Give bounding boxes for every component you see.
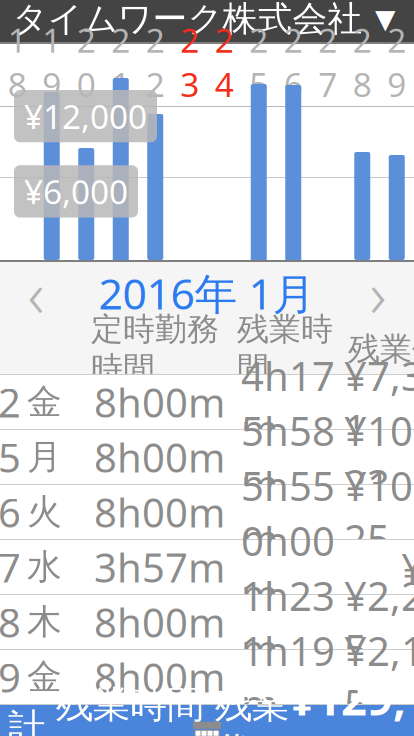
staticText: 27 <box>318 18 337 106</box>
staticText: 月 <box>27 436 62 478</box>
staticText: 8h00m <box>94 595 225 648</box>
staticText: 定時勤務時間 <box>91 310 219 388</box>
staticText: 22 <box>0 375 21 428</box>
staticText: 19 <box>42 18 61 106</box>
staticText: 23 <box>180 18 199 106</box>
staticText: 29 <box>0 650 21 703</box>
staticText: ¥12,000 <box>24 94 147 138</box>
staticText: 水 <box>27 546 62 588</box>
staticText: 8h00m <box>94 485 225 538</box>
staticText: 4h17m <box>241 349 335 455</box>
staticText: 25 <box>0 430 21 483</box>
staticText: 2016年 1月 <box>98 265 315 321</box>
staticText: 1h19m <box>241 624 335 730</box>
staticText: ¥6,000 <box>24 169 128 214</box>
staticText: ⌄ <box>344 0 402 7</box>
staticText: 残業時間 74.3h <box>45 678 204 736</box>
staticText: 24 <box>215 18 234 106</box>
button[interactable]: 前の月 <box>0 262 72 324</box>
staticText: ‹ <box>27 250 44 335</box>
staticText: › <box>369 250 386 335</box>
staticText: 27 <box>0 540 21 593</box>
staticText: 金 <box>27 381 62 423</box>
staticText: 火 <box>27 491 62 533</box>
staticText: タイムワーク株式会社 <box>12 0 362 40</box>
staticText: 21 <box>111 18 130 106</box>
staticText: ¥129,648 <box>289 668 406 736</box>
staticText: 26 <box>0 485 21 538</box>
button[interactable]: 22 <box>0 375 414 430</box>
staticText: 1h23m <box>241 569 335 675</box>
staticText: 8h00m <box>94 430 225 483</box>
staticText: 20 <box>77 18 96 106</box>
staticText: 残業時間 <box>237 310 333 388</box>
button[interactable]: 26 <box>0 485 414 540</box>
staticText: 木 <box>27 601 62 643</box>
staticText: 残業代 <box>348 329 414 369</box>
staticText: 3h57m <box>94 540 225 593</box>
staticText: ¥0 <box>401 540 414 593</box>
staticText: 22 <box>146 18 165 106</box>
staticText: 26 <box>284 18 303 106</box>
button[interactable]: 28 <box>0 595 414 650</box>
staticText: ▼ <box>375 4 396 34</box>
button[interactable]: 25 <box>0 430 414 485</box>
staticText: 29 <box>387 18 406 106</box>
staticText: 残業代 <box>215 682 289 736</box>
staticText: 5h55m <box>241 459 335 565</box>
staticText: 28 <box>353 18 372 106</box>
staticText: 金 <box>27 656 62 698</box>
staticText: 28 <box>0 595 21 648</box>
staticText: ¥10,623 <box>344 404 414 510</box>
staticText: 計 <box>8 705 45 736</box>
button[interactable]: 27 <box>0 540 414 595</box>
staticText: ¥2,275 <box>344 569 414 675</box>
staticText: 0h00m <box>241 514 335 620</box>
staticText: ¥2,165 <box>344 624 414 730</box>
button[interactable]: 次の月 <box>342 262 414 324</box>
staticText: ¥7,301 <box>344 349 414 455</box>
staticText: ¥10,525 <box>344 459 414 565</box>
staticText: 8h00m <box>94 375 225 428</box>
staticText: 18 <box>8 18 27 106</box>
staticText: 5h58m <box>241 404 335 510</box>
staticText: 8h00m <box>94 650 225 703</box>
button[interactable]: タイムワーク株式会社 <box>0 0 414 42</box>
staticText: 25 <box>249 18 268 106</box>
button[interactable]: 29 <box>0 650 414 705</box>
